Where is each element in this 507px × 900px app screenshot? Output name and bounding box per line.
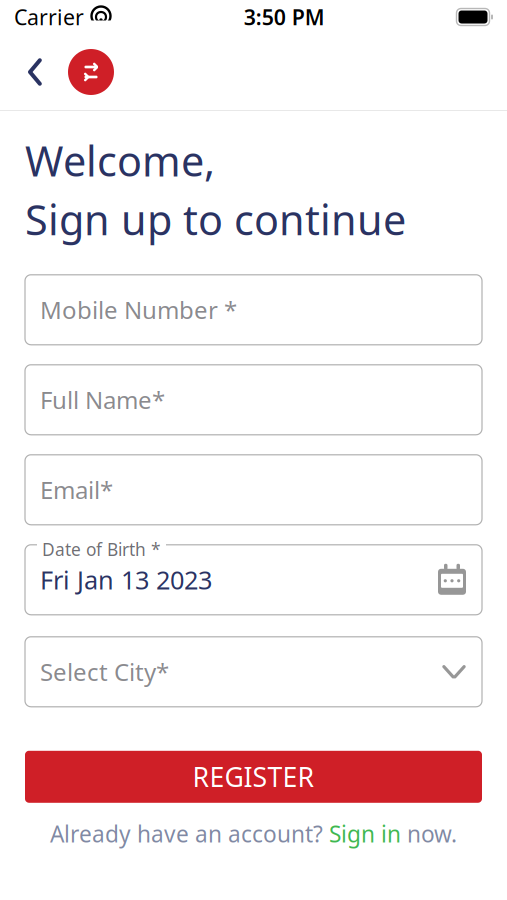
staticText: Sign in: [329, 819, 401, 849]
staticText: Already have an account?: [50, 819, 329, 849]
staticText: 3:50 PM: [244, 3, 325, 31]
button[interactable]: Back: [18, 52, 52, 92]
staticText: now.: [401, 819, 457, 849]
staticText: Welcome,: [25, 133, 215, 188]
staticText: Select City*: [40, 656, 169, 688]
staticText: Full Name*: [40, 384, 165, 416]
button[interactable]: Already have an account?: [25, 821, 482, 847]
button[interactable]: Email*: [25, 455, 482, 525]
staticText: Date of Birth *: [42, 538, 161, 561]
button[interactable]: Select City*: [25, 637, 482, 707]
staticText: Fri Jan 13 2023: [40, 563, 212, 597]
staticText: REGISTER: [192, 759, 314, 794]
button[interactable]: Full Name*: [25, 365, 482, 435]
button[interactable]: Fri Jan 13 2023: [25, 545, 482, 615]
staticText: Carrier: [14, 3, 84, 31]
button[interactable]: Mobile Number *: [25, 275, 482, 345]
staticText: Mobile Number *: [40, 294, 237, 326]
staticText: Sign up to continue: [25, 192, 406, 247]
button[interactable]: REGISTER: [25, 751, 482, 803]
staticText: Email*: [40, 474, 113, 506]
